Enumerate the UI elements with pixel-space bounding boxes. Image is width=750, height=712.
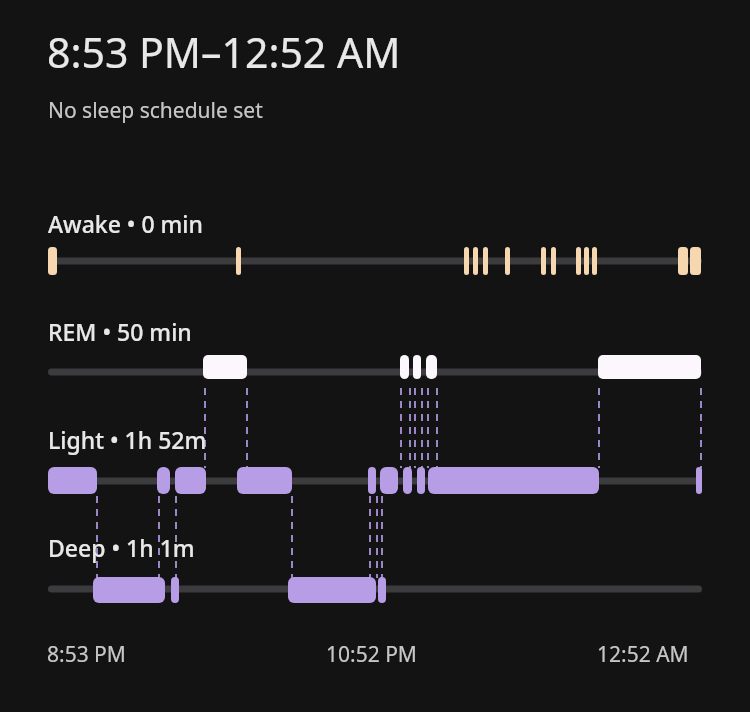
button[interactable]: Light • 1h 52m (48, 424, 207, 455)
staticText: Deep • 1h 1m (48, 532, 195, 563)
staticText: 8:53 PM–12:52 AM (47, 24, 401, 80)
staticText: 10:52 PM (326, 640, 417, 669)
button[interactable]: Deep • 1h 1m (48, 532, 195, 563)
staticText: 8:53 PM (47, 640, 126, 669)
button[interactable]: Awake • 0 min (48, 208, 203, 239)
staticText: Light • 1h 52m (48, 424, 207, 455)
staticText: REM • 50 min (48, 316, 192, 347)
staticText: Awake • 0 min (48, 208, 203, 239)
button[interactable]: REM • 50 min (48, 316, 192, 347)
staticText: 12:52 AM (597, 640, 689, 669)
staticText: No sleep schedule set (48, 96, 263, 125)
